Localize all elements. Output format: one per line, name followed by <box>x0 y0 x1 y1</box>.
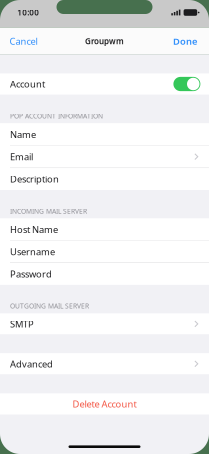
button[interactable]: SMTP <box>0 313 209 334</box>
staticText: Cancel <box>9 35 37 47</box>
staticText: Email <box>10 150 33 163</box>
staticText: INCOMING MAIL SERVER <box>10 207 87 215</box>
button[interactable]: Host Name <box>0 218 209 240</box>
button[interactable]: Cancel <box>0 28 45 54</box>
staticText: Account <box>10 78 45 90</box>
staticText: Groupwm <box>85 36 124 46</box>
staticText: Description <box>10 173 59 185</box>
staticText: Name <box>10 128 36 140</box>
button[interactable]: Account, on <box>0 73 209 95</box>
staticText: Delete Account <box>72 398 136 410</box>
staticText: Host Name <box>10 223 58 236</box>
staticText: Username <box>10 245 55 258</box>
button[interactable]: Name <box>0 123 209 145</box>
button[interactable]: Description <box>0 168 209 190</box>
button[interactable]: Password <box>0 263 209 285</box>
staticText: SMTP <box>10 318 34 330</box>
button[interactable]: Advanced <box>0 353 209 374</box>
staticText: 10:00 <box>17 7 39 18</box>
button[interactable]: Email <box>0 146 209 168</box>
staticText: POP ACCOUNT INFORMATION <box>10 111 103 120</box>
button[interactable]: Delete Account <box>0 393 209 414</box>
staticText: Password <box>10 268 52 280</box>
staticText: Advanced <box>10 358 53 370</box>
button[interactable]: Username <box>0 241 209 262</box>
button[interactable]: Done <box>165 28 209 54</box>
staticText: OUTGOING MAIL SERVER <box>10 301 89 310</box>
staticText: Done <box>173 35 197 47</box>
